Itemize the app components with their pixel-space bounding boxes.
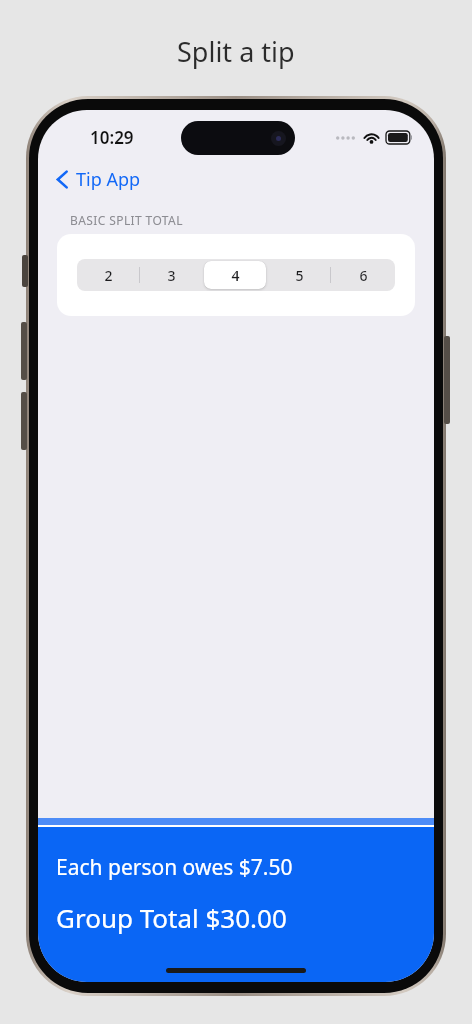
staticText: 3 (167, 266, 176, 285)
button[interactable]: 2 (77, 259, 140, 291)
staticText: Each person owes $7.50 (56, 853, 293, 882)
button[interactable]: 3 (140, 259, 203, 291)
button[interactable]: Tip App (52, 160, 145, 198)
staticText: 6 (359, 266, 368, 285)
button[interactable]: 6 (331, 259, 395, 291)
staticText: BASIC SPLIT TOTAL (70, 212, 183, 228)
staticText: Tip App (76, 167, 141, 192)
staticText: 10:29 (90, 126, 134, 149)
staticText: 2 (104, 266, 113, 285)
button[interactable]: 4 (203, 259, 267, 291)
staticText: 5 (295, 266, 304, 285)
staticText: Split a tip (177, 33, 295, 70)
staticText: Group Total $30.00 (56, 900, 287, 935)
staticText: 4 (231, 266, 240, 285)
button[interactable]: 5 (267, 259, 331, 291)
